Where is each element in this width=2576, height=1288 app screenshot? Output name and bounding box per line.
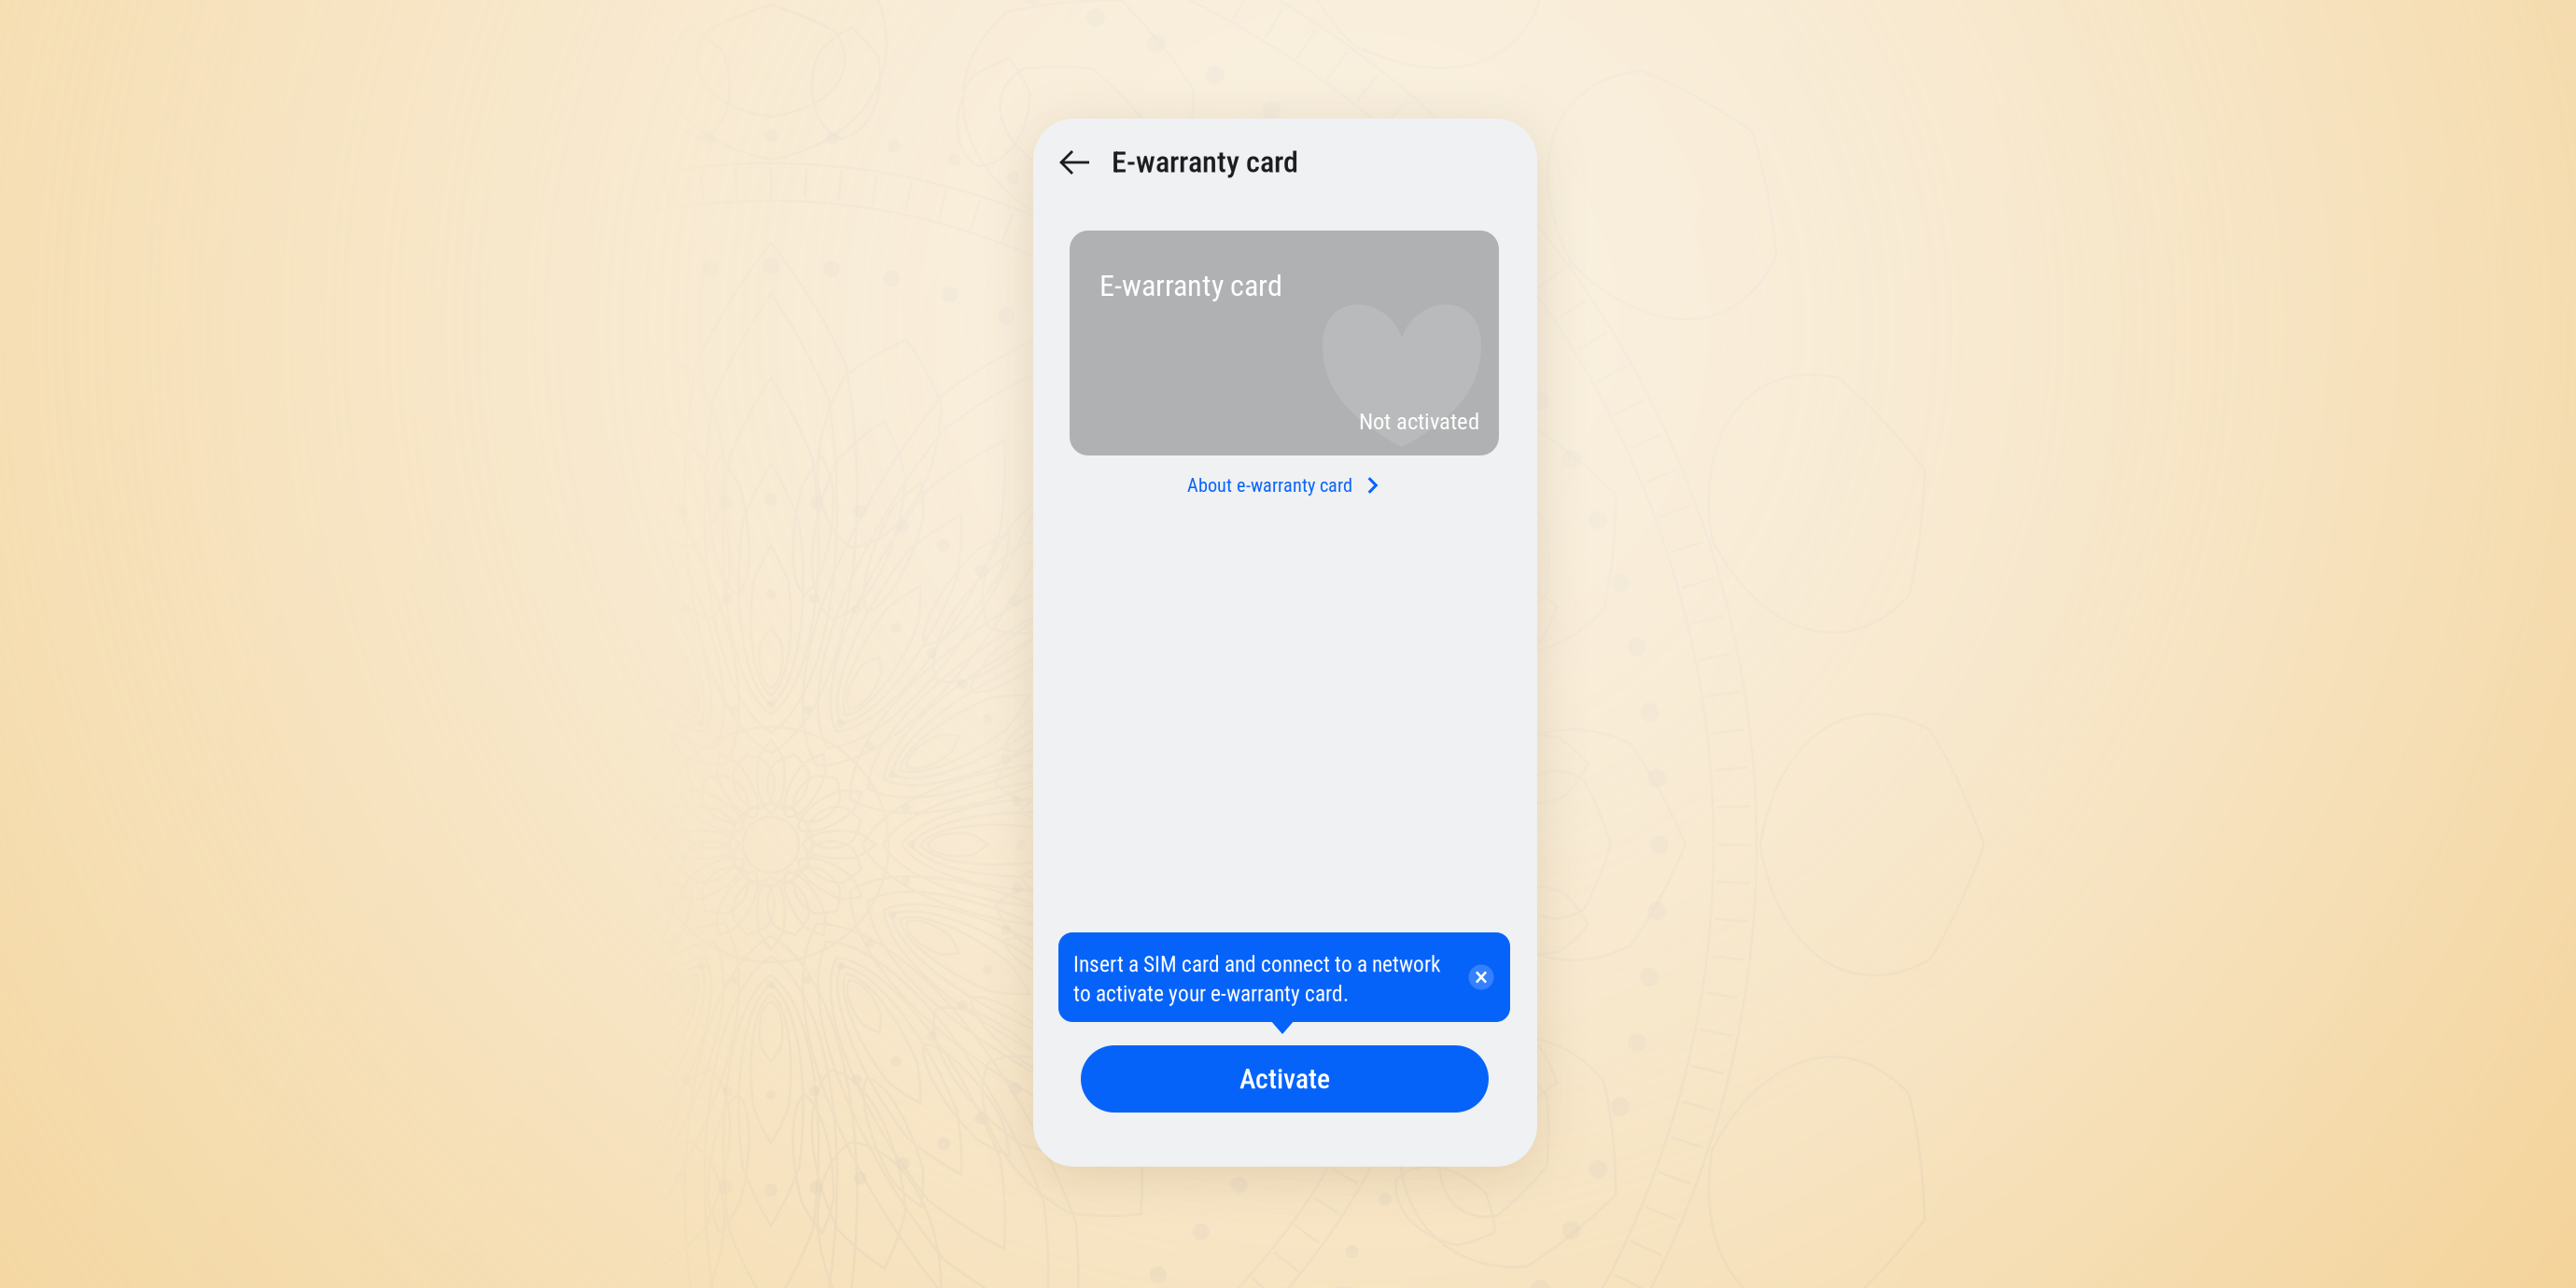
button[interactable]: Dismiss tip: [1468, 964, 1494, 990]
staticText: Insert a SIM card and connect to a netwo…: [1073, 952, 1441, 977]
button[interactable]: About e-warranty card: [1174, 462, 1391, 509]
staticText: Activate: [1239, 1063, 1330, 1095]
staticText: E-warranty card: [1112, 144, 1298, 179]
button[interactable]: Back: [1049, 137, 1101, 188]
staticText: Not activated: [1359, 408, 1479, 435]
staticText: E-warranty card: [1099, 268, 1282, 303]
button[interactable]: Activate: [1081, 1045, 1489, 1113]
staticText: About e-warranty card: [1187, 474, 1352, 496]
staticText: to activate your e-warranty card.: [1073, 981, 1349, 1006]
